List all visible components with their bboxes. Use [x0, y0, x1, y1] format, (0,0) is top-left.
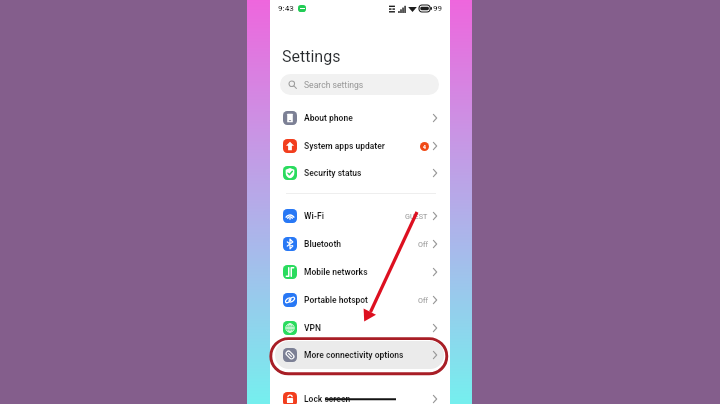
staticText: Portable hotspot	[304, 295, 368, 305]
button[interactable]: Wi-Fi	[275, 202, 444, 230]
button[interactable]: Portable hotspot	[275, 286, 444, 314]
button[interactable]: Bluetooth	[275, 230, 444, 258]
staticText: Settings	[282, 47, 341, 66]
staticText: Lock screen	[304, 394, 351, 404]
button[interactable]: Search settings	[280, 74, 439, 95]
staticText: GUEST	[405, 212, 428, 220]
button[interactable]: About phone	[275, 104, 444, 132]
button[interactable]: VPN	[275, 314, 444, 342]
staticText: Search settings	[304, 80, 364, 90]
staticText: Off	[418, 296, 428, 304]
staticText: Off	[418, 240, 428, 248]
button[interactable]: Mobile networks	[275, 258, 444, 286]
staticText: 9:43	[278, 4, 294, 13]
staticText: VPN	[304, 323, 322, 333]
staticText: System apps updater	[304, 141, 385, 151]
staticText: Wi-Fi	[304, 211, 324, 221]
staticText: Mobile networks	[304, 267, 368, 277]
button[interactable]: More connectivity options	[275, 341, 444, 369]
staticText: Bluetooth	[304, 239, 342, 249]
staticText: Security status	[304, 168, 362, 178]
staticText: About phone	[304, 113, 353, 123]
staticText: 99	[433, 4, 443, 13]
button[interactable]: Lock screen	[275, 385, 444, 404]
button[interactable]: System apps updater	[275, 132, 444, 160]
staticText: More connectivity options	[304, 350, 404, 360]
button[interactable]: Security status	[275, 159, 444, 187]
staticText: 4	[423, 144, 426, 150]
